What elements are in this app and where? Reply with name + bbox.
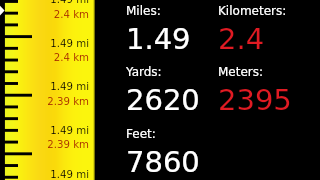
staticText: Kilometers: [218, 4, 287, 18]
button[interactable]: Feet: [126, 123, 218, 180]
staticText: 7860 [126, 145, 200, 179]
staticText: 2395 [218, 83, 292, 117]
button[interactable]: Yards: [126, 61, 218, 118]
button[interactable]: Miles: [126, 0, 218, 57]
staticText: 2.4 km [0, 9, 89, 21]
staticText: Miles: [126, 4, 161, 18]
staticText: 1.49 mi [0, 169, 89, 180]
staticText: 2.4 [218, 22, 265, 56]
staticText: 2.39 km [0, 96, 89, 108]
staticText: 1.49 [126, 22, 191, 56]
button[interactable]: Kilometers: [218, 0, 310, 57]
staticText: 1.49 mi [0, 125, 89, 137]
staticText: 2.39 km [0, 139, 89, 151]
staticText: 2620 [126, 83, 200, 117]
staticText: Feet: [126, 127, 156, 141]
staticText: 1.49 mi [0, 38, 89, 50]
staticText: Yards: [126, 65, 162, 79]
button[interactable]: Distance ruler [0, 0, 95, 180]
button[interactable]: Meters: [218, 61, 310, 118]
staticText: 2.4 km [0, 52, 89, 64]
staticText: 1.49 mi [0, 81, 89, 93]
staticText: Meters: [218, 65, 264, 79]
staticText: 1.49 mi [0, 0, 89, 6]
